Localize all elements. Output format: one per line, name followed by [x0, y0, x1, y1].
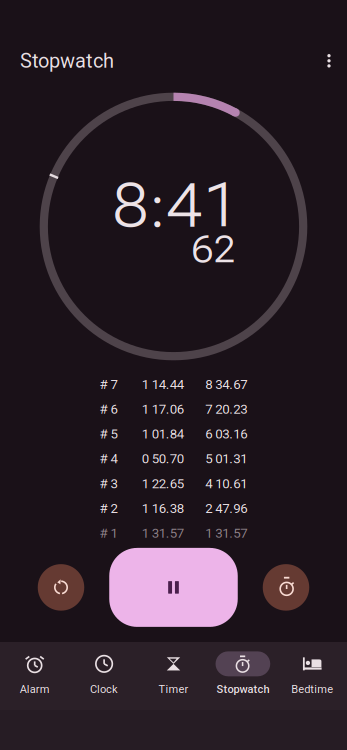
button[interactable]: Clock: [69, 642, 139, 710]
staticText: # 7: [99, 377, 117, 392]
staticText: Bedtime: [291, 683, 333, 696]
staticText: 7 20.23: [205, 401, 247, 417]
staticText: Stopwatch: [216, 683, 269, 696]
staticText: # 6: [99, 401, 117, 417]
staticText: 1 31.57: [205, 525, 247, 541]
staticText: Stopwatch: [20, 49, 114, 72]
staticText: 1 31.57: [142, 525, 184, 541]
staticText: 1 17.06: [142, 401, 184, 417]
button[interactable]: Stopwatch: [208, 642, 278, 710]
staticText: 8:41: [112, 169, 240, 241]
staticText: Clock: [90, 683, 118, 696]
button[interactable]: Lap: [263, 564, 309, 611]
staticText: 1 16.38: [142, 500, 184, 516]
staticText: # 3: [99, 476, 117, 491]
staticText: # 2: [99, 500, 117, 516]
staticText: 62: [191, 228, 235, 271]
staticText: 1 01.84: [142, 426, 184, 442]
button[interactable]: Timer: [139, 642, 208, 710]
staticText: 4 10.61: [205, 476, 247, 491]
button[interactable]: Reset: [38, 564, 84, 611]
staticText: 5 01.31: [205, 451, 247, 467]
staticText: Alarm: [20, 683, 50, 696]
staticText: 6 03.16: [205, 426, 247, 442]
staticText: # 4: [99, 451, 117, 467]
staticText: 2 47.96: [205, 500, 247, 516]
staticText: 0 50.70: [142, 451, 184, 467]
staticText: # 5: [99, 426, 117, 442]
button[interactable]: More options: [311, 40, 347, 82]
button[interactable]: Pause: [109, 548, 238, 627]
button[interactable]: Alarm: [0, 642, 69, 710]
staticText: 8 34.67: [205, 377, 247, 392]
staticText: Timer: [158, 683, 188, 696]
staticText: # 1: [99, 525, 117, 541]
staticText: 1 14.44: [142, 377, 184, 392]
staticText: 1 22.65: [142, 476, 184, 491]
button[interactable]: Bedtime: [278, 642, 347, 710]
